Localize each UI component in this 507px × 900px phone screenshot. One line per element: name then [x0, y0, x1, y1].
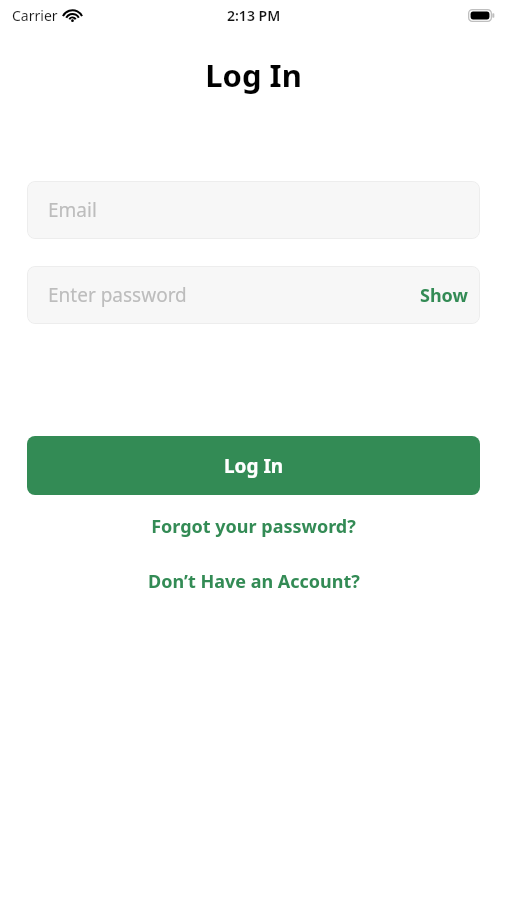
- staticText: Enter password: [48, 282, 187, 308]
- other: Wi-Fi signal: [64, 9, 81, 22]
- staticText: Forgot your password?: [151, 514, 356, 539]
- staticText: Carrier: [12, 6, 58, 25]
- button[interactable]: Enter password: [27, 266, 480, 324]
- staticText: Log In: [224, 453, 284, 479]
- button[interactable]: Show: [408, 275, 480, 316]
- staticText: 2:13 PM: [227, 6, 281, 25]
- button[interactable]: Don’t Have an Account?: [0, 562, 507, 601]
- button[interactable]: Email: [27, 181, 480, 239]
- staticText: Show: [420, 283, 468, 308]
- button[interactable]: Log In: [27, 436, 480, 495]
- button[interactable]: Forgot your password?: [0, 507, 507, 546]
- other: Battery full: [468, 9, 495, 22]
- staticText: Don’t Have an Account?: [148, 569, 360, 594]
- staticText: Email: [48, 197, 97, 223]
- staticText: Log In: [0, 54, 507, 96]
